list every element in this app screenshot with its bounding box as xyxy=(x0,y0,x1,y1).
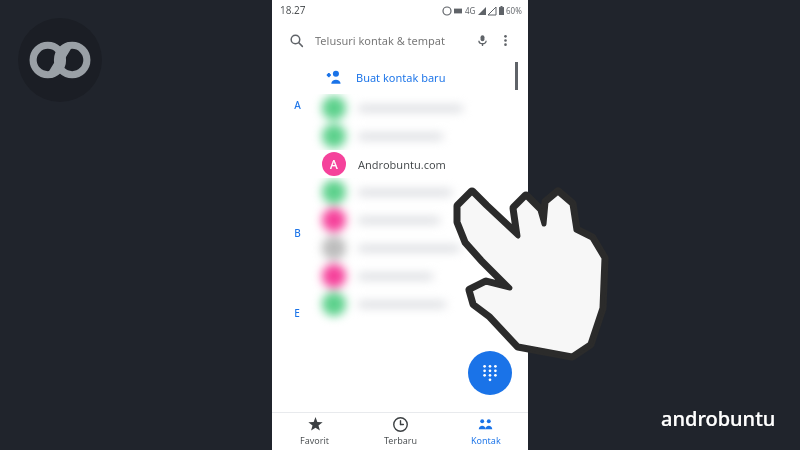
staticText: B xyxy=(294,226,301,240)
staticText: A xyxy=(330,156,338,172)
button[interactable]: More options xyxy=(499,34,512,47)
staticText: Kontak xyxy=(471,434,501,446)
button[interactable]: Terbaru xyxy=(358,417,443,446)
button[interactable]: Buat kontak baru xyxy=(272,60,528,94)
other: Androbuntu logo xyxy=(18,18,102,102)
button[interactable]: Dialpad xyxy=(468,351,512,395)
button[interactable]: A xyxy=(272,150,528,178)
staticText: androbuntu xyxy=(661,405,776,432)
staticText: E xyxy=(294,306,300,320)
staticText: 4G xyxy=(465,5,476,16)
button[interactable]: Voice search xyxy=(476,34,489,47)
button[interactable]: Favorit xyxy=(272,417,358,446)
staticText: Buat kontak baru xyxy=(356,70,446,85)
button[interactable]: Telusuri kontak & tempat xyxy=(280,24,520,56)
staticText: Telusuri kontak & tempat xyxy=(315,33,476,48)
staticText: 18.27 xyxy=(280,3,306,17)
staticText: 60% xyxy=(506,5,522,16)
staticText: Terbaru xyxy=(384,434,418,446)
staticText: Favorit xyxy=(300,434,330,446)
button[interactable]: Kontak xyxy=(443,417,528,446)
staticText: Androbuntu.com xyxy=(358,157,446,172)
staticText: A xyxy=(294,98,301,112)
